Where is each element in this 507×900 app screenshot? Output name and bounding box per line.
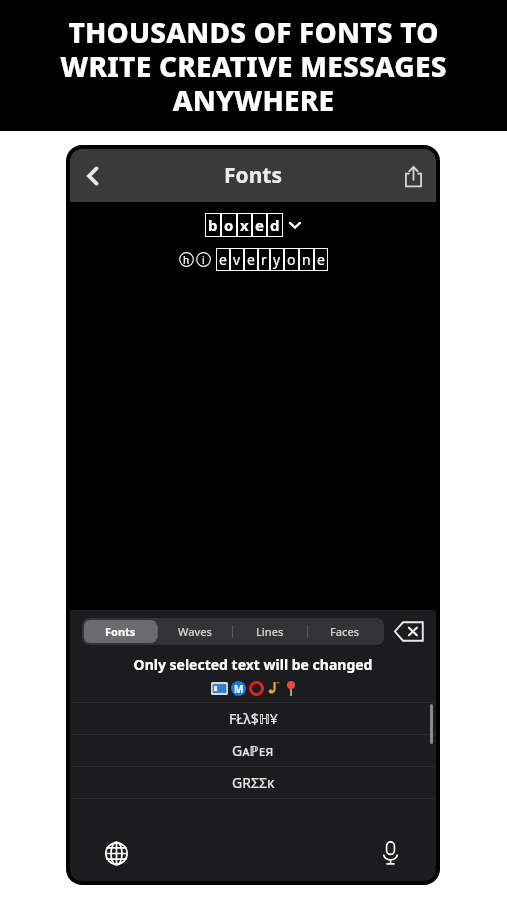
- button[interactable]: Lines: [233, 620, 307, 643]
- staticText: THOUSANDS OF FONTS TO WRITE CREATIVE MES…: [60, 13, 447, 119]
- button[interactable]: Voice input: [370, 833, 410, 873]
- staticText: r: [261, 250, 267, 269]
- staticText: e: [255, 215, 264, 235]
- staticText: x: [240, 215, 249, 235]
- staticText: FŁλ$ℍ¥: [229, 709, 278, 728]
- button[interactable]: b: [199, 211, 307, 239]
- button[interactable]: Back: [70, 153, 116, 199]
- button[interactable]: Change keyboard language: [96, 833, 136, 873]
- button[interactable]: Gᴀℙᴇя: [70, 735, 436, 766]
- button[interactable]: Fonts: [84, 620, 157, 643]
- staticText: Faces: [330, 624, 360, 639]
- staticText: h: [183, 253, 190, 267]
- staticText: Waves: [178, 624, 212, 639]
- button[interactable]: Share: [390, 153, 436, 199]
- staticText: n: [302, 250, 311, 269]
- button[interactable]: FŁλ$ℍ¥: [70, 703, 436, 734]
- button[interactable]: Waves: [158, 620, 232, 643]
- staticText: e: [247, 250, 255, 269]
- staticText: Fonts: [224, 161, 282, 190]
- staticText: Only selected text will be changed: [70, 655, 436, 674]
- staticText: M: [234, 682, 244, 696]
- staticText: Fonts: [105, 624, 136, 639]
- button[interactable]: GRΣΣκ: [70, 767, 436, 798]
- staticText: o: [287, 250, 296, 269]
- staticText: b: [208, 215, 218, 235]
- staticText: y: [273, 250, 281, 269]
- staticText: o: [224, 215, 234, 235]
- staticText: e: [317, 250, 325, 269]
- staticText: i: [202, 253, 205, 267]
- staticText: d: [270, 215, 280, 235]
- staticText: e: [219, 250, 227, 269]
- button[interactable]: Backspace: [392, 618, 426, 645]
- button[interactable]: Faces: [308, 620, 382, 643]
- staticText: Gᴀℙᴇя: [232, 741, 274, 760]
- staticText: GRΣΣκ: [232, 773, 275, 792]
- staticText: v: [233, 250, 241, 269]
- staticText: Lines: [256, 624, 284, 639]
